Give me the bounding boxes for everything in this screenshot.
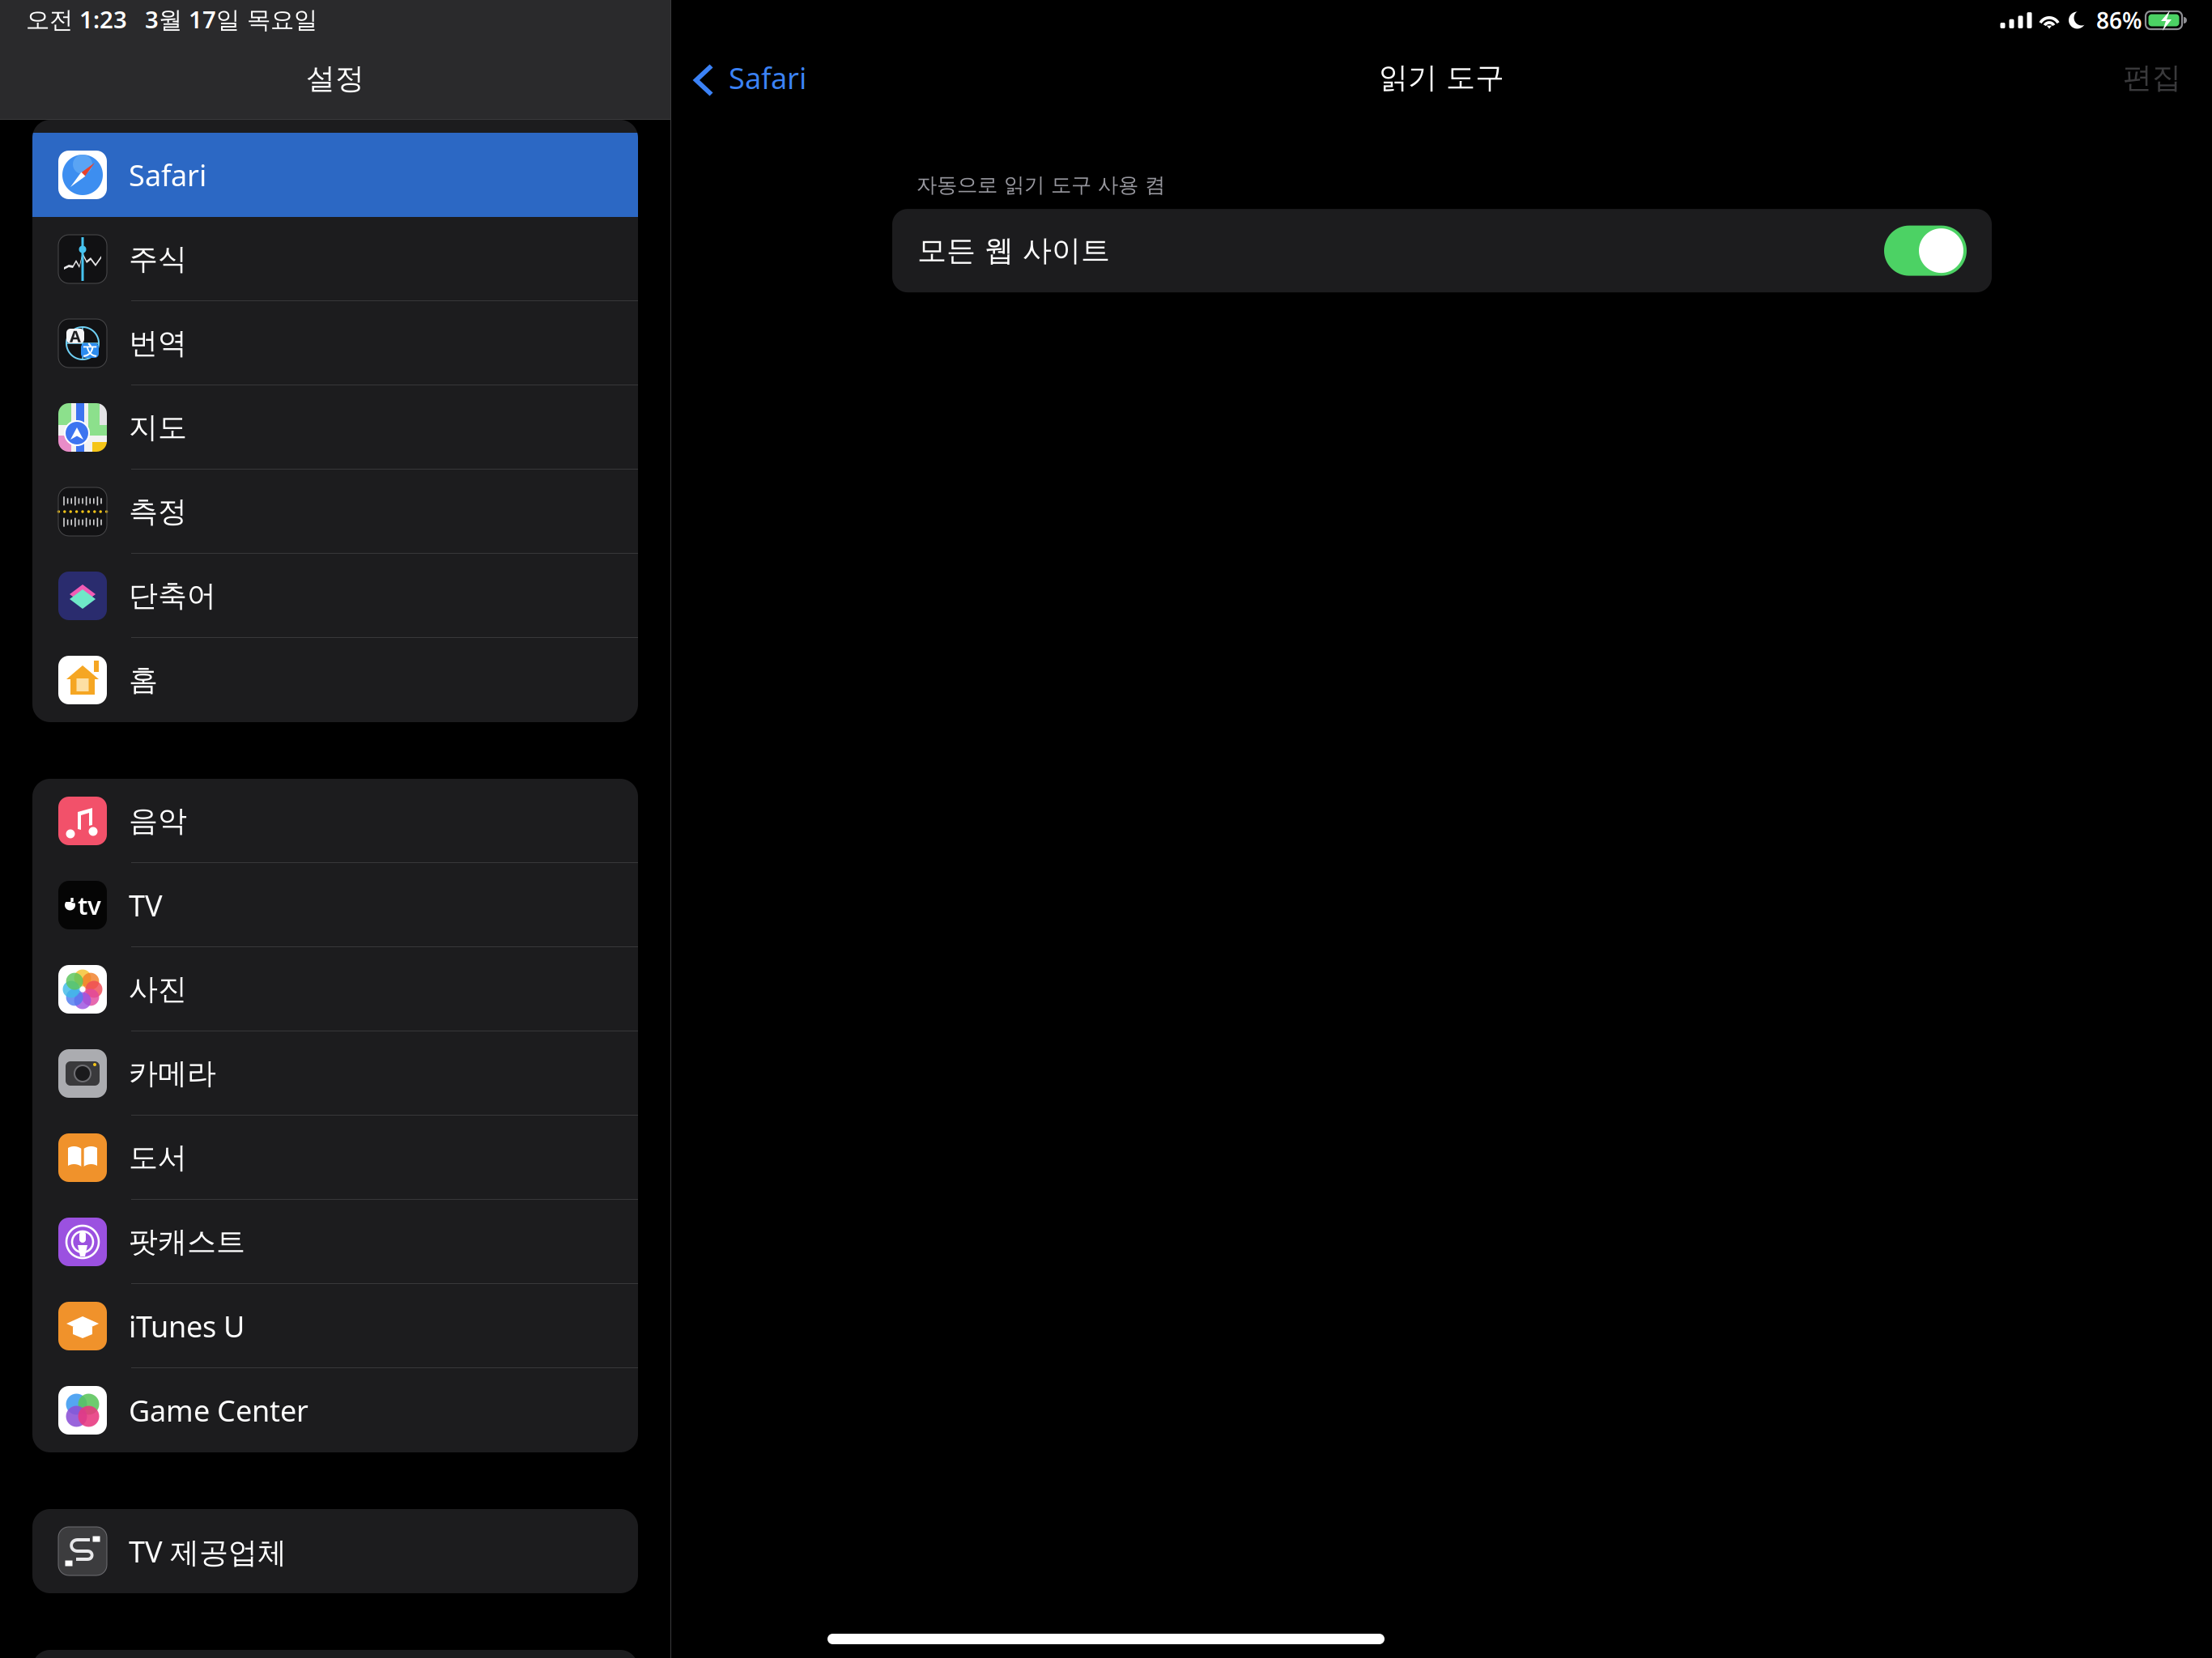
staticText: 지도 [129, 410, 187, 445]
button[interactable]: 카메라 [32, 1031, 638, 1116]
staticText: 오전 1:23 [26, 3, 127, 35]
button[interactable]: 측정 [32, 470, 638, 554]
button[interactable]: Game Center [32, 1368, 638, 1452]
button[interactable]: 홈 [32, 638, 638, 722]
staticText: 3월 17일 목요일 [145, 3, 317, 35]
button[interactable]: Safari [32, 133, 638, 217]
staticText: Safari [129, 156, 206, 194]
button[interactable]: TV [32, 863, 638, 947]
staticText: 홈 [129, 662, 158, 698]
button[interactable]: 사진 [32, 947, 638, 1031]
button[interactable]: 단축어 [32, 554, 638, 638]
staticText: 편집 [2123, 60, 2181, 96]
staticText: 설정 [306, 61, 364, 96]
button[interactable]: 모든 웹 사이트 [892, 209, 1992, 292]
staticText: 단축어 [129, 578, 216, 614]
button[interactable]: 도서 [32, 1116, 638, 1200]
button[interactable]: TV 제공업체 [32, 1509, 638, 1593]
staticText: iTunes U [129, 1307, 245, 1345]
staticText: 자동으로 읽기 도구 사용 켬 [917, 172, 1165, 198]
staticText: Safari [729, 58, 806, 97]
button[interactable]: 편집 [2123, 40, 2212, 115]
staticText: 주식 [129, 241, 187, 277]
staticText: 86% [2096, 5, 2142, 35]
staticText: 사진 [129, 971, 187, 1007]
button[interactable]: 지도 [32, 385, 638, 470]
staticText: 팟캐스트 [129, 1224, 245, 1260]
staticText: 읽기 도구 [1379, 60, 1504, 96]
button[interactable]: 팟캐스트 [32, 1200, 638, 1284]
button[interactable]: 번역 [32, 301, 638, 385]
button[interactable]: Safari [671, 40, 806, 115]
staticText: 음악 [129, 803, 187, 839]
staticText: 도서 [129, 1140, 187, 1176]
staticText: TV [129, 886, 163, 924]
staticText: TV 제공업체 [129, 1532, 287, 1571]
button[interactable]: iTunes U [32, 1284, 638, 1368]
button[interactable]: 주식 [32, 217, 638, 301]
staticText: 카메라 [129, 1056, 216, 1091]
staticText: 측정 [129, 494, 187, 530]
button[interactable]: 음악 [32, 779, 638, 863]
staticText: 번역 [129, 325, 187, 361]
staticText: 모든 웹 사이트 [917, 233, 1110, 269]
staticText: Game Center [129, 1391, 308, 1430]
